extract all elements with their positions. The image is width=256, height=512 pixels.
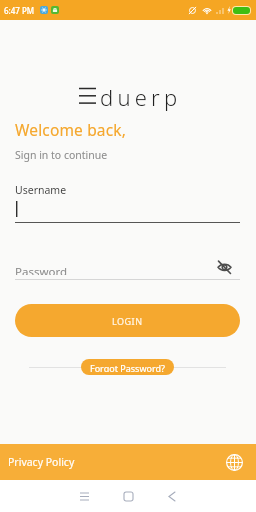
staticText: duerp	[100, 82, 182, 112]
staticText: Privacy Policy	[8, 455, 224, 469]
staticText: Forgot Password?	[90, 362, 165, 372]
staticText: Username	[15, 183, 67, 197]
staticText: 6:47 PM	[4, 5, 35, 16]
button[interactable]: Back	[152, 480, 192, 512]
button[interactable]	[15, 201, 240, 218]
button[interactable]: Home	[108, 480, 148, 512]
staticText: Welcome back,	[15, 119, 126, 140]
button[interactable]: Privacy Policy	[0, 444, 256, 480]
button[interactable]: Recent apps	[64, 480, 104, 512]
button[interactable]: LOGIN	[15, 304, 240, 337]
button[interactable]: Language	[224, 452, 244, 472]
staticText: Sign in to continue	[15, 148, 108, 162]
staticText: LOGIN	[112, 315, 143, 327]
button[interactable]: Show password	[214, 257, 234, 277]
button[interactable]: Password	[15, 264, 240, 275]
staticText: Password	[15, 264, 68, 275]
button[interactable]: Forgot Password?	[81, 359, 174, 375]
